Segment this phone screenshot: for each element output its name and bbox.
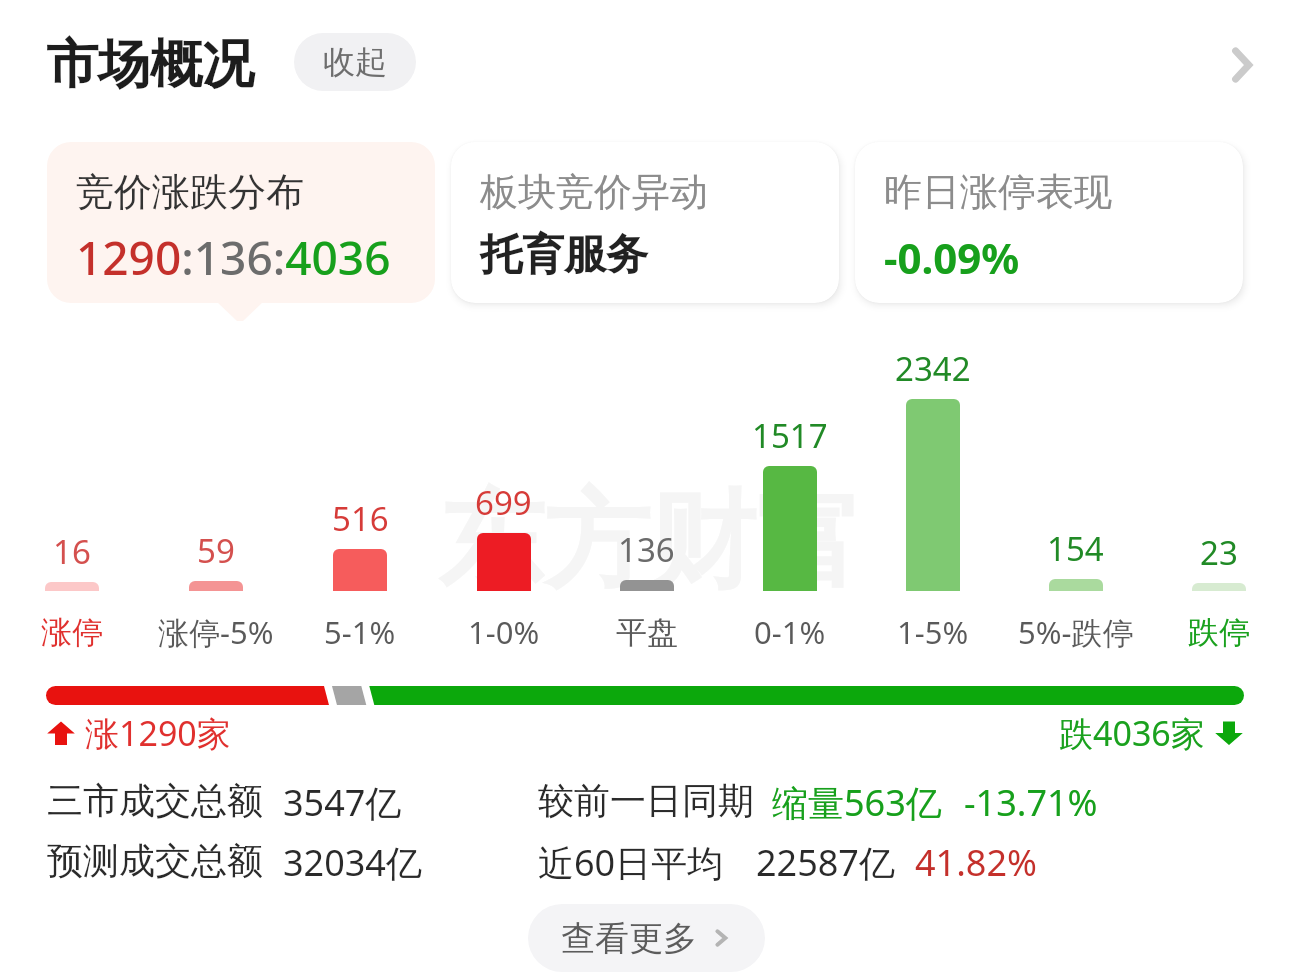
staticText: 3547亿 (283, 778, 402, 827)
staticText: 1517 (752, 413, 828, 458)
staticText: 预测成交总额 (47, 838, 263, 883)
staticText: 跌4036家 (1059, 710, 1205, 756)
staticText: 查看更多 (561, 917, 697, 960)
staticText: 1-5% (897, 611, 969, 653)
staticText: 22587亿 (756, 838, 895, 887)
staticText: 收起 (323, 42, 387, 82)
button[interactable]: 收起 (294, 33, 416, 91)
staticText: 三市成交总额 (47, 778, 263, 823)
staticText: 涨停-5% (158, 611, 274, 653)
staticText: 0-1% (754, 611, 826, 653)
staticText: 涨1290家 (85, 710, 231, 756)
staticText: 竞价涨跌分布 (76, 168, 304, 216)
staticText: 昨日涨停表现 (884, 168, 1112, 216)
staticText: -13.71% (964, 778, 1098, 827)
staticText: 699 (475, 480, 532, 525)
staticText: 板块竞价异动 (480, 168, 708, 216)
staticText: 23 (1200, 530, 1238, 575)
staticText: 154 (1047, 526, 1104, 571)
staticText: -0.09% (884, 229, 1020, 286)
staticText: 5-1% (324, 611, 396, 653)
staticText: 2342 (895, 346, 971, 391)
staticText: 缩量563亿 (772, 778, 942, 827)
staticText: 59 (197, 528, 235, 573)
staticText: 516 (332, 496, 389, 541)
staticText: 托育服务 (480, 229, 648, 282)
staticText: 41.82% (915, 838, 1037, 887)
staticText: 东方财富 (438, 475, 862, 609)
staticText: 平盘 (616, 613, 678, 652)
button[interactable]: 查看更多 (528, 904, 765, 972)
button[interactable]: 竞价涨跌分布 (47, 142, 435, 303)
staticText: 16 (53, 529, 91, 574)
button[interactable]: 展开更多 (1210, 35, 1270, 95)
staticText: 5%-跌停 (1018, 611, 1134, 653)
button[interactable]: 板块竞价异动 (451, 142, 839, 303)
staticText: 近60日平均 (538, 838, 724, 887)
staticText: 1290:136:4036 (76, 226, 391, 289)
staticText: 跌停 (1188, 613, 1250, 652)
staticText: 136 (618, 527, 675, 572)
staticText: 32034亿 (283, 838, 422, 887)
staticText: 较前一日同期 (538, 778, 754, 823)
button[interactable]: 昨日涨停表现 (855, 142, 1243, 303)
staticText: 1-0% (468, 611, 540, 653)
staticText: 市场概况 (46, 32, 254, 98)
staticText: 涨停 (41, 613, 103, 652)
